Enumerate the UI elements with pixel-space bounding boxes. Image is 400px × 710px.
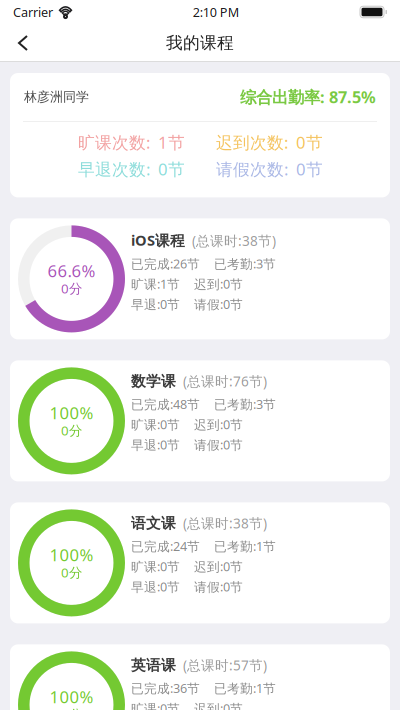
staticText: 66.6% [47, 259, 95, 282]
staticText: 数学课 [131, 372, 176, 390]
staticText: 已考勤:1节 [214, 679, 276, 697]
staticText: 100% [49, 543, 93, 566]
staticText: 英语课 [131, 656, 176, 674]
staticText: Carrier [13, 3, 53, 21]
staticText: 早退次数: [78, 158, 150, 180]
staticText: 100% [49, 401, 93, 424]
staticText: 0节 [296, 158, 323, 180]
staticText: 迟到:0节 [194, 700, 243, 710]
staticText: 我的课程 [166, 32, 234, 53]
staticText: 0节 [158, 158, 185, 180]
staticText: 2:10 PM [193, 3, 239, 21]
staticText: 0分 [61, 705, 82, 710]
staticText: iOS课程 [131, 230, 185, 250]
staticText: 已完成:26节 [131, 255, 200, 272]
staticText: 迟到次数: [216, 131, 288, 154]
staticText: 综合出勤率: 87.5% [240, 86, 376, 108]
staticText: 林彦洲同学 [24, 89, 89, 105]
staticText: 旷课:0节 [131, 416, 180, 433]
staticText: (总课时:76节) [183, 372, 267, 390]
button[interactable]: 返回 [4, 24, 44, 61]
staticText: 请假:0节 [194, 295, 243, 313]
staticText: 早退:0节 [131, 295, 180, 313]
staticText: 已完成:24节 [131, 537, 200, 555]
staticText: 已完成:36节 [131, 679, 200, 697]
staticText: 旷课次数: [78, 131, 150, 154]
staticText: 已考勤:3节 [214, 395, 276, 413]
staticText: 已考勤:1节 [214, 537, 276, 555]
staticText: 0分 [61, 421, 82, 439]
staticText: 迟到:0节 [194, 416, 243, 433]
staticText: 语文课 [131, 514, 176, 532]
button[interactable]: 100% [10, 502, 390, 623]
staticText: 迟到:0节 [194, 275, 243, 293]
staticText: 请假次数: [216, 158, 288, 180]
button[interactable]: 100% [10, 644, 390, 710]
button[interactable]: 100% [10, 360, 390, 481]
staticText: 0节 [296, 131, 323, 154]
staticText: (总课时:57节) [183, 656, 267, 674]
staticText: 旷课:1节 [131, 275, 180, 293]
staticText: 已完成:48节 [131, 395, 200, 413]
staticText: 请假:0节 [194, 578, 243, 595]
staticText: 旷课:0节 [131, 700, 180, 710]
staticText: 已考勤:3节 [214, 255, 276, 272]
staticText: (总课时:38节) [183, 514, 267, 532]
staticText: 早退:0节 [131, 578, 180, 595]
button[interactable]: 66.6% [10, 218, 390, 339]
staticText: 100% [49, 685, 93, 708]
staticText: 请假:0节 [194, 436, 243, 453]
staticText: 迟到:0节 [194, 558, 243, 575]
staticText: (总课时:38节) [192, 231, 276, 250]
staticText: 早退:0节 [131, 436, 180, 453]
staticText: 1节 [158, 131, 185, 154]
staticText: 0分 [61, 279, 82, 297]
staticText: 0分 [61, 563, 82, 581]
staticText: 旷课:0节 [131, 558, 180, 575]
